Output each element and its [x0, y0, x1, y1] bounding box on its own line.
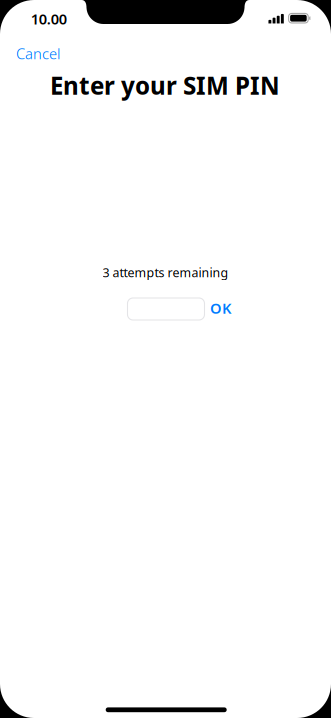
staticText: 10.00	[31, 9, 67, 29]
button[interactable]: Cancel	[12, 40, 64, 66]
button[interactable]: SIM PIN	[127, 298, 204, 320]
staticText: Enter your SIM PIN	[50, 69, 280, 102]
staticText: OK	[210, 298, 231, 318]
staticText: Cancel	[16, 43, 60, 63]
staticText: 3 attempts remaining	[102, 264, 228, 281]
button[interactable]: OK	[204, 295, 236, 321]
